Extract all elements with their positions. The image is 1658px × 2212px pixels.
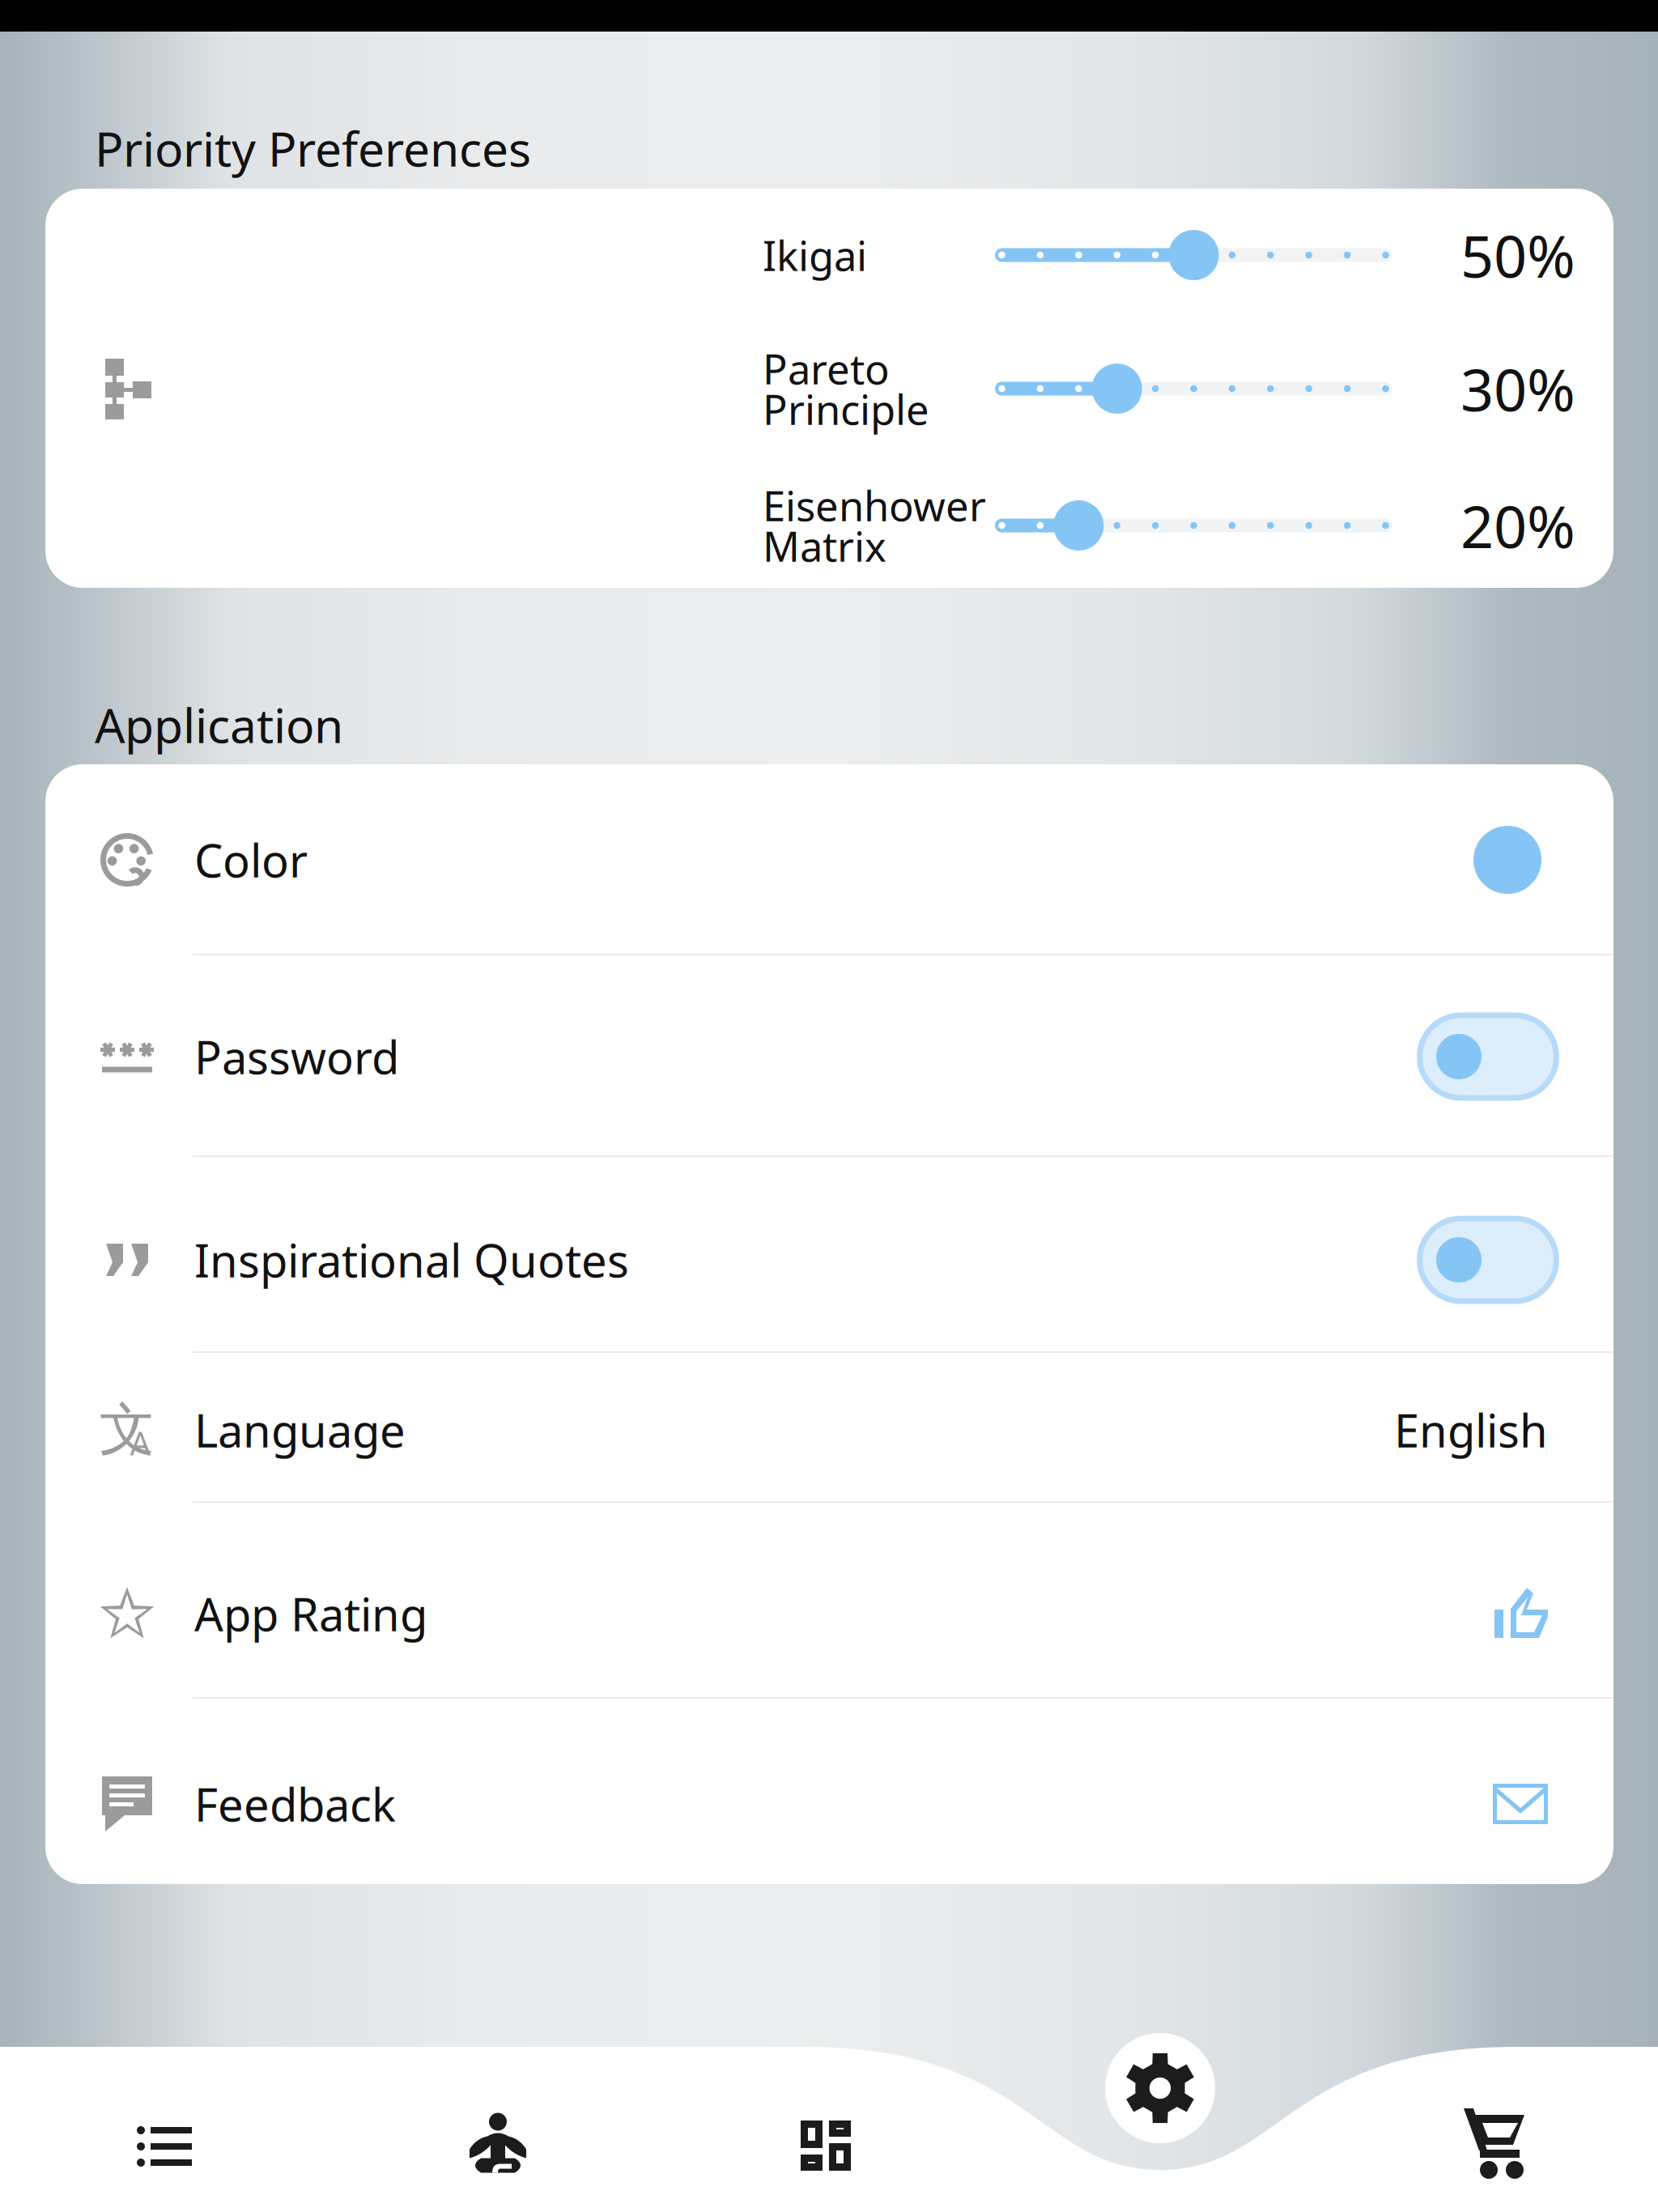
button[interactable]: Tasks	[108, 2102, 221, 2191]
staticText: 文	[99, 1395, 155, 1464]
button[interactable]: Shop	[1439, 2094, 1553, 2194]
staticText: A	[130, 1421, 151, 1464]
staticText: Inspirational Quotes	[194, 1230, 629, 1290]
button[interactable]: Settings	[1105, 2033, 1215, 2143]
staticText: English	[1394, 1400, 1548, 1460]
staticText: Password	[194, 1026, 399, 1087]
staticText: Language	[194, 1400, 406, 1460]
staticText: Color	[194, 830, 308, 890]
staticText: 50%	[1460, 216, 1575, 294]
staticText: App Rating	[194, 1584, 427, 1644]
staticText: Eisenhower	[763, 478, 986, 533]
staticText: Feedback	[194, 1774, 396, 1834]
button[interactable]: Dashboard	[769, 2100, 882, 2191]
staticText: Pareto	[763, 341, 890, 396]
staticText: Ikigai	[763, 228, 867, 282]
staticText: Matrix	[763, 519, 886, 573]
staticText: 30%	[1460, 350, 1575, 427]
staticText: Priority Preferences	[95, 117, 531, 180]
staticText: Application	[95, 693, 343, 756]
staticText: Principle	[763, 382, 929, 436]
staticText: 20%	[1460, 487, 1575, 564]
button[interactable]: Meditate	[441, 2091, 555, 2196]
